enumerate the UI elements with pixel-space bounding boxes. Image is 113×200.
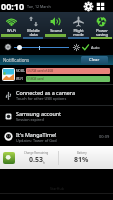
staticText: Session expired — [16, 117, 44, 122]
button[interactable]: Samsung account — [0, 106, 113, 126]
button[interactable]: Sound — [44, 12, 67, 39]
staticText: Charge Remaining — [24, 151, 49, 155]
button[interactable]: Settings — [84, 2, 93, 11]
staticText: Samsung account — [16, 110, 62, 117]
staticText: 3.67GB used of 4GB — [27, 69, 54, 73]
button[interactable]: Wi-Fi — [0, 12, 22, 39]
button[interactable]: Power saving — [90, 12, 113, 39]
staticText: Power saving — [96, 28, 108, 37]
staticText: Auto — [91, 45, 100, 50]
staticText: Wi-Fi — [7, 28, 16, 33]
staticText: Mobile data — [27, 28, 40, 37]
staticText: 00:10 — [1, 0, 25, 12]
staticText: Updates: Tower of God — [16, 138, 57, 143]
staticText: It's MangaTime! — [16, 131, 57, 138]
staticText: 81% — [74, 155, 89, 165]
button[interactable]: MOBILE — [0, 65, 113, 84]
button[interactable]: Mobile data — [22, 12, 44, 39]
button[interactable]: Connected as a camera — [0, 85, 113, 105]
staticText: h — [43, 161, 45, 165]
button[interactable]: Charge Remaining — [0, 146, 113, 169]
button[interactable]: Auto brightness — [82, 44, 89, 51]
button[interactable]: Brightness slider — [14, 43, 69, 52]
button[interactable]: Flight mode — [67, 12, 90, 39]
button[interactable]: Clear — [81, 56, 108, 64]
button[interactable]: Close panel — [0, 183, 113, 200]
staticText: 0.53 — [29, 155, 43, 165]
staticText: 00:09 — [99, 134, 110, 139]
staticText: Sound — [50, 28, 62, 33]
staticText: Connected as a camera — [16, 89, 75, 96]
staticText: Clear — [89, 57, 100, 63]
button[interactable]: It's MangaTime! — [0, 127, 113, 146]
staticText: Flight mode — [73, 28, 84, 37]
staticText: Tue, 12 March — [27, 4, 51, 9]
staticText: Notifications — [3, 57, 30, 63]
staticText: WI-FI — [16, 77, 23, 81]
staticText: 9.58GB used — [27, 77, 44, 81]
button[interactable]: Brightness low — [4, 43, 12, 51]
staticText: Battery — [77, 151, 87, 155]
staticText: MOBILE — [16, 69, 25, 73]
staticText: Touch for other USB options — [16, 96, 67, 101]
staticText: StarHub — [50, 186, 64, 191]
button[interactable]: Quick settings — [96, 2, 105, 11]
